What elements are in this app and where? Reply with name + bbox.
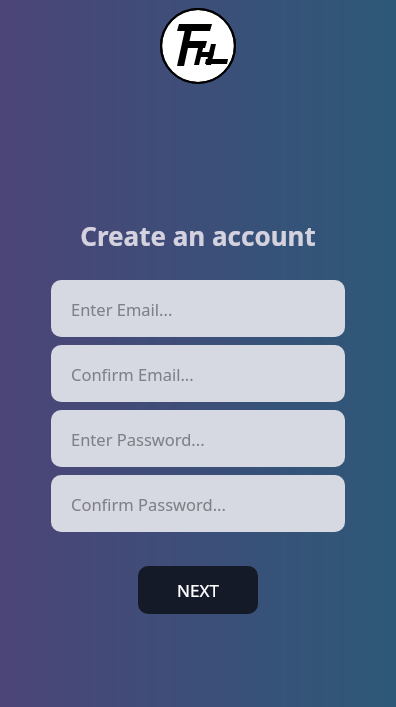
button[interactable]: NEXT	[138, 566, 258, 614]
staticText: Enter Password...	[71, 428, 205, 450]
other: FH logo	[160, 8, 236, 84]
button[interactable]: Confirm Email...	[51, 345, 345, 402]
staticText: Confirm Email...	[71, 363, 194, 385]
button[interactable]: Enter Email...	[51, 280, 345, 337]
staticText: Confirm Password...	[71, 493, 226, 515]
staticText: Enter Email...	[71, 298, 173, 320]
button[interactable]: Confirm Password...	[51, 475, 345, 532]
button[interactable]: Enter Password...	[51, 410, 345, 467]
staticText: NEXT	[177, 579, 219, 602]
staticText: Create an account	[80, 218, 316, 253]
